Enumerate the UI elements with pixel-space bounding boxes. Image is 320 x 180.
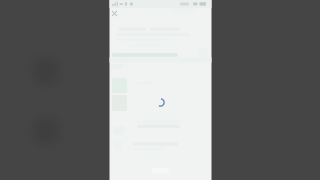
button[interactable] — [109, 138, 211, 156]
button[interactable]: Close — [107, 6, 121, 20]
button[interactable] — [109, 95, 211, 113]
button[interactable] — [109, 77, 211, 95]
button[interactable] — [109, 119, 211, 137]
